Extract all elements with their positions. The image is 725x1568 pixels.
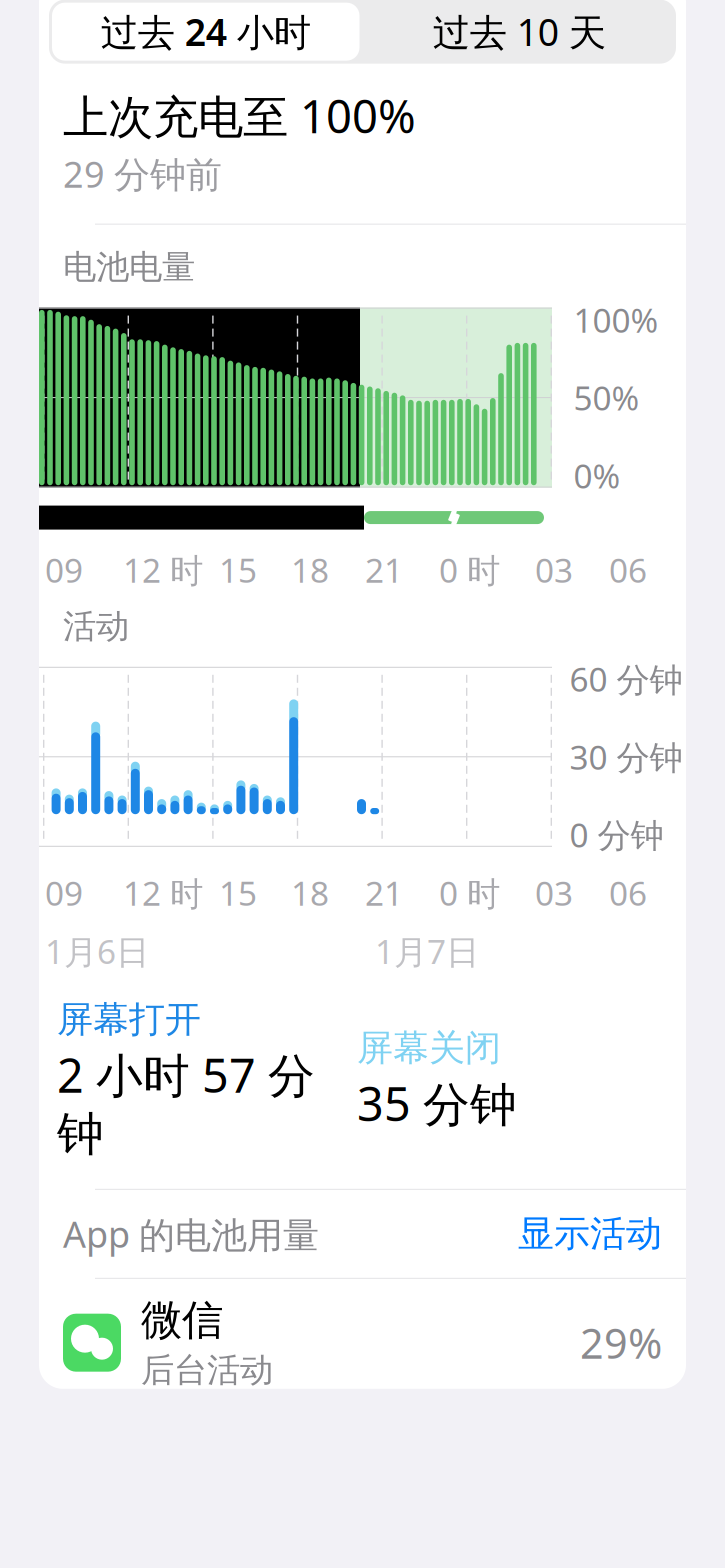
staticText: App 的电池用量 <box>63 1210 319 1258</box>
staticText: 60 分钟 <box>569 657 682 701</box>
staticText: 06 <box>609 871 647 915</box>
staticText: 21 <box>365 871 403 915</box>
staticText: 30 分钟 <box>569 735 682 779</box>
staticText: 0 时 <box>439 548 500 592</box>
staticText: 18 <box>291 548 329 592</box>
button[interactable]: 显示活动 <box>518 1212 662 1256</box>
staticText: 活动 <box>63 606 129 647</box>
button[interactable]: 过去 10 天 <box>362 0 676 64</box>
staticText: 微信 <box>141 1295 223 1346</box>
staticText: 100% <box>573 298 658 342</box>
staticText: 35 分钟 <box>357 1072 517 1134</box>
staticText: 过去 10 天 <box>433 7 606 56</box>
staticText: 15 <box>219 871 257 915</box>
staticText: 0 时 <box>439 871 500 915</box>
button[interactable]: 微信 <box>39 1279 686 1389</box>
staticText: 1月7日 <box>375 929 479 973</box>
staticText: 18 <box>291 871 329 915</box>
staticText: 29 分钟前 <box>63 150 222 198</box>
staticText: 上次充电至 100% <box>63 86 416 146</box>
staticText: 12 时 <box>123 871 203 915</box>
staticText: 09 <box>45 548 83 592</box>
staticText: 屏幕关闭 <box>357 1026 501 1070</box>
staticText: 2 小时 57 分钟 <box>57 1043 315 1163</box>
staticText: 0 分钟 <box>569 812 663 857</box>
staticText: 03 <box>535 548 573 592</box>
staticText: 12 时 <box>123 548 203 592</box>
staticText: 50% <box>573 375 639 420</box>
staticText: 1月6日 <box>45 929 149 973</box>
staticText: 0% <box>573 453 620 498</box>
staticText: 09 <box>45 871 83 915</box>
button[interactable]: 过去 24 小时 <box>49 0 362 64</box>
staticText: 屏幕打开 <box>57 997 201 1041</box>
staticText: 显示活动 <box>518 1212 662 1256</box>
staticText: 21 <box>365 548 403 592</box>
staticText: 过去 24 小时 <box>101 7 311 56</box>
staticText: 06 <box>609 548 647 592</box>
staticText: 03 <box>535 871 573 915</box>
staticText: 29% <box>580 1315 662 1370</box>
staticText: 后台活动 <box>141 1350 273 1390</box>
staticText: 电池电量 <box>63 247 195 287</box>
staticText: 15 <box>219 548 257 592</box>
